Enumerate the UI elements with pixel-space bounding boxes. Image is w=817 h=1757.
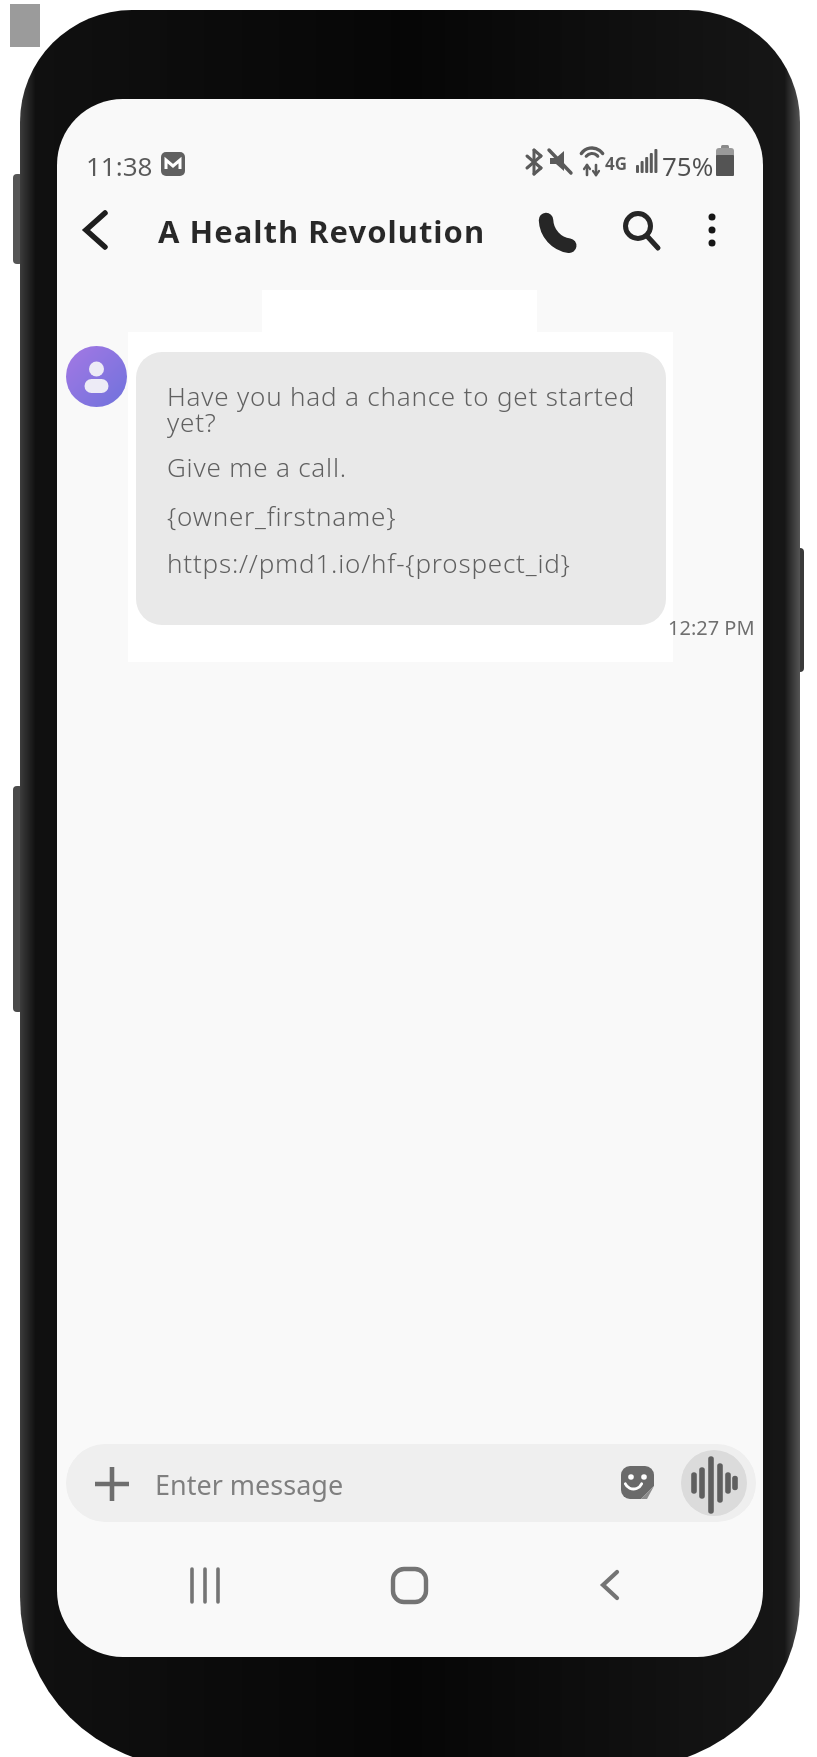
button[interactable]	[681, 1450, 747, 1516]
staticText: Give me a call.	[167, 449, 347, 484]
button[interactable]	[70, 204, 122, 258]
staticText: 4G	[605, 152, 628, 175]
button[interactable]	[168, 1556, 244, 1616]
staticText: yet?	[167, 404, 217, 439]
button[interactable]	[534, 202, 592, 260]
staticText: 12:27 PM	[668, 614, 755, 641]
staticText: A Health Revolution	[158, 210, 486, 252]
button[interactable]	[688, 202, 736, 260]
button[interactable]	[88, 1460, 136, 1508]
staticText: {owner_firstname}	[167, 498, 397, 533]
staticText: Enter message	[155, 1466, 344, 1503]
button[interactable]	[136, 352, 666, 625]
staticText: 11:38	[86, 148, 153, 180]
button[interactable]	[66, 1444, 756, 1522]
button[interactable]	[612, 1457, 664, 1509]
staticText: 75%	[662, 148, 714, 180]
button[interactable]	[572, 1556, 648, 1616]
staticText: Have you had a chance to get started	[167, 378, 636, 413]
button[interactable]	[66, 346, 127, 407]
staticText: https://pmd1.io/hf-{prospect_id}	[167, 545, 571, 580]
button[interactable]	[613, 202, 671, 260]
button[interactable]	[372, 1556, 448, 1616]
